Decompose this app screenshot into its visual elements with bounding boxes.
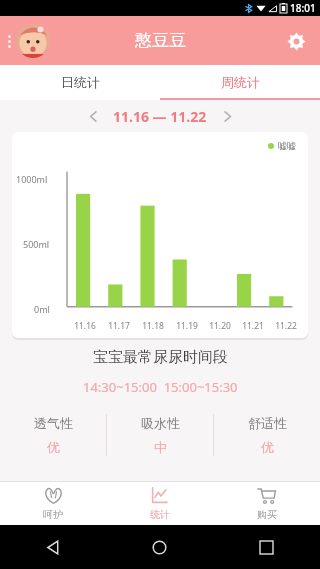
button[interactable]: Profile menu [6, 24, 52, 58]
button[interactable]: Previous week [79, 102, 107, 130]
staticText: 优 [47, 439, 60, 455]
button[interactable]: Settings [272, 17, 320, 65]
button[interactable]: 舒适性 [214, 408, 320, 462]
button[interactable]: 呵护 [0, 482, 106, 525]
staticText: 嘘嘘 [278, 140, 296, 151]
staticText: 11.18 [142, 320, 164, 332]
staticText: 透气性 [34, 415, 73, 431]
staticText: 购买 [257, 508, 277, 521]
staticText: 舒适性 [248, 415, 287, 431]
button[interactable]: 日统计 [0, 65, 160, 98]
staticText: 11.19 [176, 320, 198, 332]
staticText: 11.16 — 11.22 [113, 107, 207, 126]
staticText: 优 [261, 439, 274, 455]
staticText: 统计 [150, 508, 170, 521]
button[interactable]: 周统计 [160, 65, 320, 98]
staticText: 呵护 [43, 508, 63, 521]
staticText: 11.22 [275, 320, 297, 332]
staticText: 11.17 [108, 320, 130, 332]
staticText: 吸水性 [141, 415, 180, 431]
staticText: 宝宝最常尿尿时间段 [93, 348, 228, 367]
staticText: 500ml [23, 238, 50, 250]
button[interactable]: 吸水性 [107, 408, 213, 462]
staticText: 中 [154, 439, 167, 455]
button[interactable]: 透气性 [0, 408, 106, 462]
staticText: 0ml [34, 303, 50, 315]
staticText: 11.20 [209, 320, 231, 332]
staticText: 14:30~15:00 15:00~15:30 [83, 378, 238, 396]
staticText: 憨豆豆 [135, 30, 186, 51]
staticText: 1000ml [16, 173, 48, 185]
staticText: 日统计 [61, 74, 100, 90]
button[interactable]: Next week [213, 102, 241, 130]
staticText: 周统计 [221, 74, 260, 90]
staticText: 11.21 [242, 320, 264, 332]
button[interactable]: 购买 [213, 482, 320, 525]
button[interactable]: 统计 [106, 482, 213, 525]
staticText: 18:01 [290, 1, 316, 15]
staticText: 11.16 [74, 320, 96, 332]
